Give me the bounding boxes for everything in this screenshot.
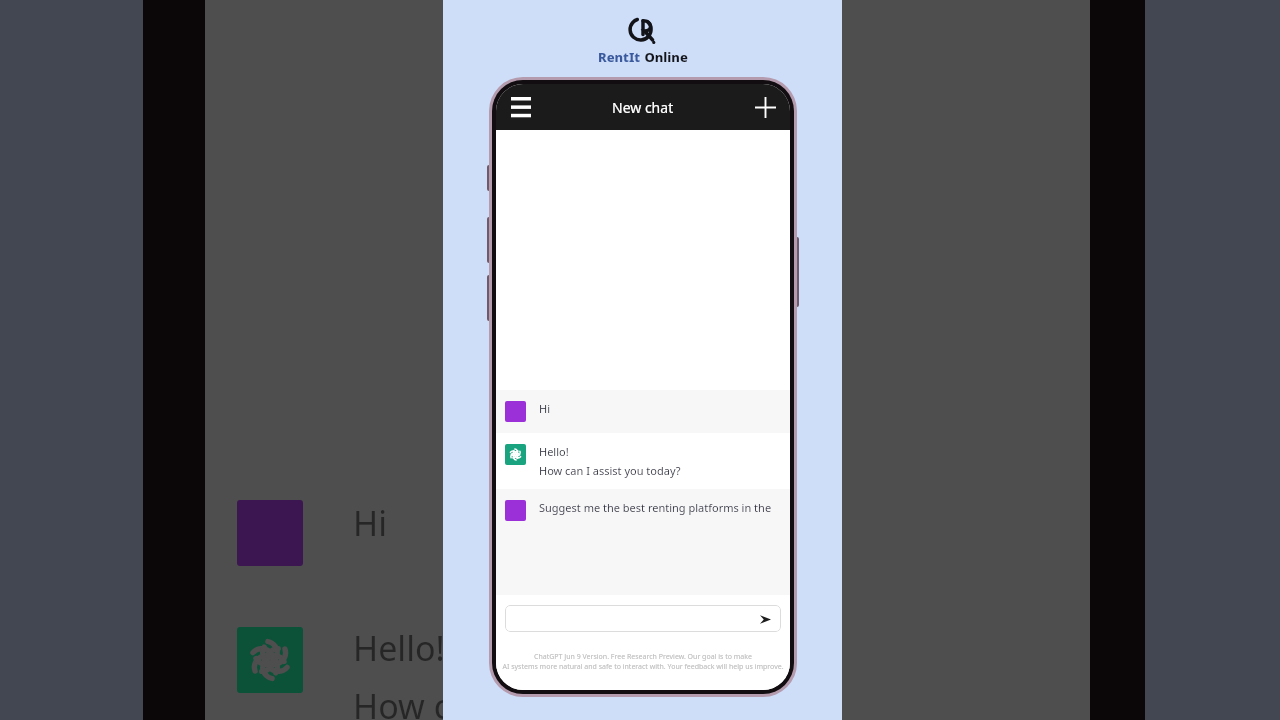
staticText: Hi [539, 401, 550, 416]
staticText: Online [641, 48, 688, 66]
staticText: How can I assist you today? [539, 463, 681, 478]
button[interactable]: Menu [504, 90, 538, 124]
staticText: Hi [353, 500, 387, 546]
staticText: How c [353, 683, 450, 720]
button[interactable]: Send [756, 610, 774, 628]
staticText: Suggest me the best renting platforms in… [539, 500, 772, 515]
button[interactable]: Send [505, 605, 781, 632]
button[interactable]: New chat [748, 90, 782, 124]
staticText: RentIt [598, 48, 641, 66]
staticText: ChatGPT Jun 9 Version. Free Research Pre… [496, 652, 790, 662]
staticText: Hello! [539, 444, 569, 459]
staticText: New chat [612, 98, 674, 117]
staticText: Hello! [353, 625, 445, 671]
staticText: AI systems more natural and safe to inte… [496, 662, 790, 672]
